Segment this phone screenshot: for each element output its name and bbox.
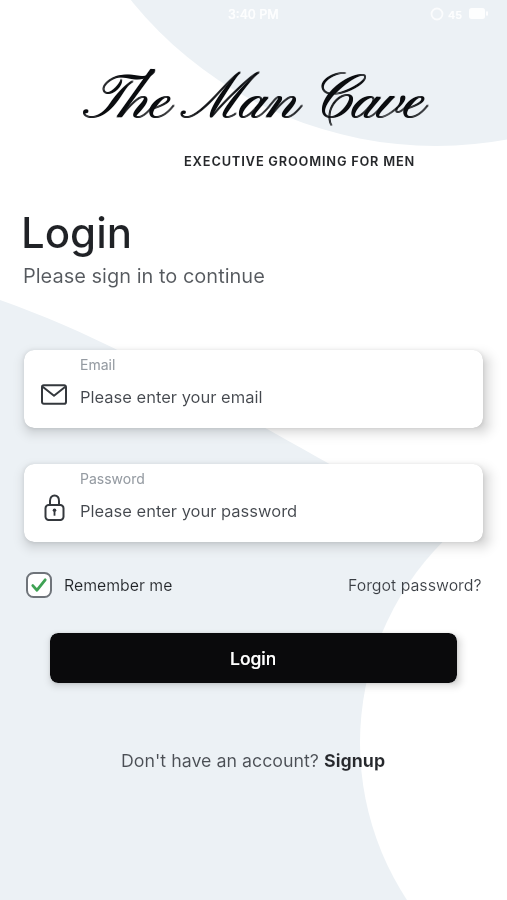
staticText: The Man Cave [84,63,425,142]
staticText: 3:40 PM [228,7,279,22]
staticText: The Man Cave [83,63,424,142]
staticText: Login [21,207,132,258]
staticText: 45 [448,8,463,21]
staticText: The Man Cave [83,64,424,143]
staticText: Don't have an account? [121,750,324,772]
button[interactable]: Signup [324,750,386,772]
button[interactable]: Email [24,350,483,428]
button[interactable]: Password [24,464,483,542]
staticText: Login [230,648,277,669]
staticText: Remember me [64,576,173,595]
button[interactable]: Forgot password? [348,576,482,595]
staticText: EXECUTIVE GROOMING FOR MEN [184,154,416,169]
staticText: Please enter your email [80,387,263,407]
staticText: Please enter your password [80,501,298,521]
button[interactable]: Remember me [26,572,173,598]
staticText: The Man Cave [84,64,425,143]
staticText: Email [80,356,116,373]
button[interactable]: Login [50,633,457,683]
staticText: Password [80,470,145,487]
staticText: Please sign in to continue [23,264,265,288]
